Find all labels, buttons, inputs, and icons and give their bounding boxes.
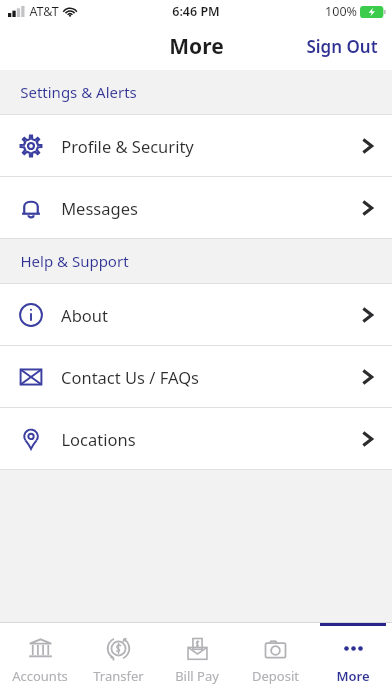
staticText: Profile & Security <box>61 135 194 157</box>
button[interactable]: Profile & Security <box>0 115 392 176</box>
staticText: Bill Pay <box>175 667 219 685</box>
button[interactable]: Sign Out <box>292 25 392 68</box>
button[interactable]: More <box>314 623 392 696</box>
button[interactable]: Contact Us / FAQs <box>0 346 392 407</box>
button[interactable]: Messages <box>0 177 392 238</box>
button[interactable]: About <box>0 284 392 345</box>
staticText: Deposit <box>252 667 299 685</box>
button[interactable]: Accounts <box>0 623 79 696</box>
staticText: About <box>61 304 108 326</box>
staticText: Accounts <box>12 667 68 685</box>
staticText: Settings & Alerts <box>20 82 137 102</box>
staticText: More <box>336 667 370 685</box>
staticText: Messages <box>61 197 138 219</box>
staticText: 6:46 PM <box>172 3 220 20</box>
button[interactable]: Bill Pay <box>158 623 236 696</box>
button[interactable]: Transfer <box>79 623 158 696</box>
staticText: Contact Us / FAQs <box>61 366 199 388</box>
staticText: Sign Out <box>306 35 378 58</box>
staticText: Transfer <box>93 667 144 685</box>
button[interactable]: Deposit <box>236 623 314 696</box>
staticText: More <box>169 32 224 61</box>
button[interactable]: Locations <box>0 408 392 469</box>
staticText: 100% <box>325 3 357 20</box>
staticText: Locations <box>61 428 136 450</box>
staticText: Help & Support <box>20 251 129 271</box>
staticText: AT&T <box>29 3 59 20</box>
